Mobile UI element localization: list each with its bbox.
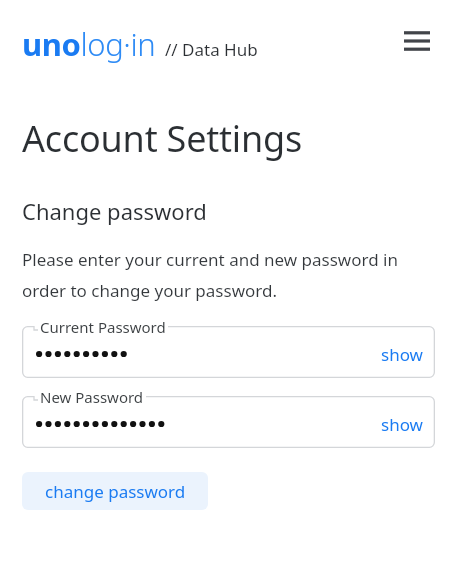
button[interactable]: Open menu — [396, 20, 438, 62]
staticText: Current Password — [40, 317, 166, 337]
staticText: Account Settings — [22, 114, 302, 163]
button[interactable]: show — [373, 409, 431, 440]
staticText: New Password — [40, 387, 144, 407]
button[interactable]: change password — [22, 472, 208, 510]
staticText: show — [381, 413, 423, 436]
button[interactable]: New Password — [22, 396, 435, 448]
staticText: Please enter your current and new passwo… — [22, 248, 436, 302]
button[interactable]: show — [373, 339, 431, 370]
staticText: Change password — [22, 196, 207, 226]
staticText: // Data Hub — [165, 38, 258, 61]
button[interactable]: Current Password — [22, 326, 435, 378]
staticText: change password — [45, 480, 186, 503]
staticText: unolog·in — [22, 23, 156, 65]
staticText: show — [381, 343, 423, 366]
